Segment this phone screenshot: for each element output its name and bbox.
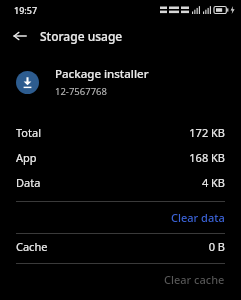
- staticText: Clear data: [171, 210, 225, 225]
- staticText: Storage usage: [40, 28, 123, 44]
- staticText: 168 KB: [189, 150, 225, 165]
- staticText: 19:57: [14, 4, 38, 16]
- staticText: 4 KB: [201, 175, 225, 190]
- staticText: Clear cache: [164, 272, 225, 287]
- staticText: Package installer: [55, 66, 149, 82]
- button[interactable]: Back: [8, 24, 32, 48]
- button[interactable]: Total: [0, 120, 241, 145]
- staticText: Data: [16, 175, 41, 190]
- staticText: App: [16, 150, 37, 165]
- button[interactable]: Cache: [0, 234, 241, 259]
- button: Clear cache: [0, 264, 241, 295]
- staticText: Total: [16, 125, 41, 140]
- button[interactable]: App: [0, 145, 241, 170]
- button[interactable]: Clear data: [0, 202, 241, 233]
- staticText: 0 B: [208, 239, 225, 254]
- staticText: Cache: [16, 239, 48, 254]
- button[interactable]: Package installer: [0, 60, 241, 104]
- staticText: 172 KB: [189, 125, 225, 140]
- button[interactable]: Data: [0, 170, 241, 195]
- staticText: 12-7567768: [55, 85, 107, 98]
